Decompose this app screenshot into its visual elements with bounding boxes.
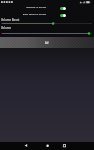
button[interactable]: Home [43, 142, 53, 150]
button[interactable]: Toggle Booster is on/off [60, 7, 66, 10]
button[interactable]: Bass Boost is on/off [10, 12, 66, 16]
button[interactable]: Booster is on/off [10, 5, 66, 9]
button[interactable]: Recents [60, 142, 70, 150]
button[interactable]: Slider [0, 21, 94, 26]
button[interactable]: Toggle Bass Boost is on/off [60, 14, 66, 17]
staticText: Bass Boost is on/off [10, 12, 46, 16]
staticText: Volume Boost [1, 18, 20, 22]
staticText: Ad [45, 41, 49, 45]
staticText: Volume [1, 26, 11, 30]
staticText: Booster is on/off [10, 5, 46, 9]
button[interactable]: Slider [0, 31, 94, 36]
button[interactable]: Back [21, 142, 31, 150]
button[interactable]: Ad [0, 37, 94, 48]
